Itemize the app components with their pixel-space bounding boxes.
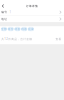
staticText: 共12件商品，合计金额 — [1, 37, 32, 41]
staticText: 待付 — [8, 27, 14, 31]
button[interactable]: 地址 — [0, 16, 64, 22]
staticText: 全部 — [1, 27, 7, 31]
staticText: 完成 — [28, 27, 34, 31]
button[interactable]: 待付 — [8, 27, 14, 31]
button[interactable]: 待发 — [14, 27, 21, 31]
button[interactable]: 待收 — [21, 27, 27, 31]
button[interactable]: 编号 — [0, 9, 64, 15]
staticText: 待收 — [21, 27, 27, 31]
staticText: 查看 — [56, 37, 62, 41]
button[interactable]: Back — [0, 3, 6, 9]
staticText: 订单详情 — [26, 4, 38, 8]
button[interactable]: 完成 — [28, 27, 34, 31]
staticText: 1 — [9, 10, 11, 14]
staticText: 待发 — [14, 27, 20, 31]
staticText: 编号 — [1, 11, 7, 14]
staticText: 地址 — [1, 17, 7, 21]
button[interactable]: 全部 — [1, 27, 7, 31]
